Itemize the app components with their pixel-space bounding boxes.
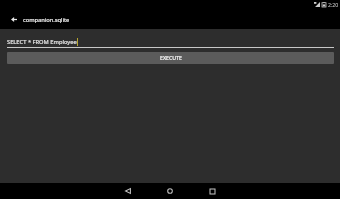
staticText: SELECT * FROM Employee: [7, 38, 77, 46]
button[interactable]: Recent apps: [204, 183, 220, 199]
button[interactable]: Back: [120, 183, 136, 199]
staticText: 2:20: [328, 1, 339, 8]
staticText: EXECUTE: [160, 54, 182, 61]
button[interactable]: SQL query input: [7, 34, 334, 48]
button[interactable]: EXECUTE: [7, 52, 334, 64]
staticText: companion.sqlite: [23, 16, 70, 24]
button[interactable]: Navigate up: [5, 11, 22, 28]
button[interactable]: Home: [162, 183, 178, 199]
